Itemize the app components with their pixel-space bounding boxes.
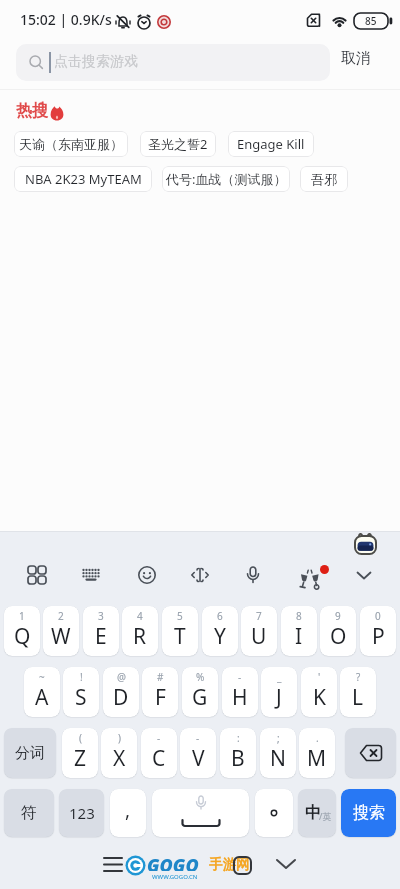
staticText: A bbox=[35, 683, 49, 712]
staticText: ' bbox=[318, 670, 321, 684]
button[interactable]: 1 bbox=[4, 606, 40, 656]
button[interactable]: NBA 2K23 MyTEAM bbox=[14, 166, 152, 192]
staticText: ~ bbox=[39, 670, 45, 684]
button[interactable]: 8 bbox=[281, 606, 317, 656]
staticText: 7 bbox=[256, 609, 262, 623]
button[interactable] bbox=[255, 789, 293, 837]
button[interactable]: ' bbox=[301, 667, 337, 717]
button[interactable]: - bbox=[180, 728, 216, 778]
button[interactable]: 0 bbox=[360, 606, 396, 656]
button[interactable]: 点击搜索游戏 bbox=[16, 44, 330, 81]
button[interactable]: ) bbox=[101, 728, 137, 778]
button[interactable] bbox=[274, 855, 298, 873]
staticText: T bbox=[174, 622, 186, 651]
button[interactable]: 4 bbox=[122, 606, 158, 656]
staticText: - bbox=[157, 731, 161, 745]
staticText: # bbox=[157, 670, 164, 684]
staticText: : bbox=[237, 731, 240, 745]
staticText: L bbox=[352, 683, 364, 712]
button[interactable] bbox=[80, 564, 102, 586]
staticText: ; bbox=[277, 731, 280, 745]
button[interactable]: 6 bbox=[202, 606, 238, 656]
staticText: J bbox=[276, 683, 282, 712]
button[interactable]: 123 bbox=[59, 789, 104, 837]
button[interactable]: 吾邪 bbox=[300, 166, 348, 192]
staticText: ) bbox=[118, 731, 121, 745]
button[interactable]: 中 bbox=[298, 789, 336, 837]
button[interactable]: @ bbox=[103, 667, 139, 717]
staticText: 2 bbox=[58, 609, 64, 623]
staticText: 搜索 bbox=[353, 803, 385, 823]
button[interactable]: 代号:血战（测试服） bbox=[162, 166, 290, 192]
staticText: D bbox=[113, 683, 129, 712]
button[interactable]: 圣光之誓2 bbox=[140, 131, 216, 157]
button[interactable]: 天谕（东南亚服） bbox=[14, 131, 128, 157]
staticText: 8 bbox=[296, 609, 302, 623]
button[interactable]: 9 bbox=[320, 606, 356, 656]
button[interactable]: : bbox=[220, 728, 256, 778]
staticText: 取消 bbox=[341, 49, 371, 68]
staticText: H bbox=[232, 683, 248, 712]
staticText: 手游网 bbox=[209, 856, 250, 872]
button[interactable]: , bbox=[110, 789, 146, 837]
button[interactable]: ; bbox=[260, 728, 296, 778]
staticText: Z bbox=[74, 744, 87, 773]
staticText: 85 bbox=[365, 14, 377, 28]
button[interactable] bbox=[152, 789, 249, 837]
button[interactable]: 3 bbox=[83, 606, 119, 656]
staticText: O bbox=[330, 622, 347, 651]
button[interactable]: # bbox=[142, 667, 178, 717]
staticText: C bbox=[152, 744, 166, 773]
staticText: - bbox=[196, 731, 200, 745]
button[interactable] bbox=[345, 728, 396, 778]
staticText: I bbox=[295, 622, 303, 651]
staticText: WWW.GOGO.CN bbox=[152, 873, 198, 881]
staticText: E bbox=[95, 622, 107, 651]
button[interactable]: ( bbox=[62, 728, 98, 778]
staticText: Y bbox=[214, 622, 226, 651]
button[interactable]: - bbox=[222, 667, 258, 717]
button[interactable] bbox=[136, 564, 158, 586]
button[interactable]: 7 bbox=[241, 606, 277, 656]
staticText: ? bbox=[356, 670, 361, 684]
staticText: S bbox=[75, 683, 87, 712]
button[interactable] bbox=[298, 566, 322, 590]
staticText: , bbox=[125, 797, 131, 823]
button[interactable]: 2 bbox=[43, 606, 79, 656]
staticText: 圣光之誓2 bbox=[148, 135, 208, 153]
staticText: 热搜 bbox=[16, 101, 48, 121]
button[interactable]: ? bbox=[340, 667, 376, 717]
button[interactable] bbox=[353, 564, 375, 586]
button[interactable] bbox=[233, 856, 252, 875]
staticText: 4 bbox=[137, 609, 143, 623]
staticText: NBA 2K23 MyTEAM bbox=[25, 170, 142, 188]
button[interactable]: 分词 bbox=[4, 728, 56, 778]
button[interactable] bbox=[26, 564, 48, 586]
button[interactable]: 搜索 bbox=[341, 789, 396, 837]
staticText: - bbox=[238, 670, 242, 684]
button[interactable] bbox=[242, 564, 264, 586]
button[interactable]: _ bbox=[261, 667, 297, 717]
staticText: 1 bbox=[19, 609, 25, 623]
staticText: 符 bbox=[21, 803, 37, 823]
button[interactable]: 取消 bbox=[341, 49, 385, 75]
button[interactable]: . bbox=[299, 728, 335, 778]
staticText: GOGO bbox=[147, 853, 199, 871]
button[interactable]: ~ bbox=[24, 667, 60, 717]
staticText: R bbox=[133, 622, 147, 651]
button[interactable]: Engage Kill bbox=[228, 131, 314, 157]
button[interactable] bbox=[189, 564, 211, 586]
staticText: ( bbox=[79, 731, 82, 745]
staticText: Engage Kill bbox=[237, 135, 305, 153]
button[interactable]: - bbox=[141, 728, 177, 778]
button[interactable]: 5 bbox=[162, 606, 198, 656]
button[interactable]: 符 bbox=[4, 789, 54, 837]
button[interactable]: ! bbox=[63, 667, 99, 717]
staticText: K bbox=[313, 683, 326, 712]
staticText: % bbox=[196, 670, 205, 684]
staticText: W bbox=[51, 622, 71, 651]
staticText: 15:02 | 0.9K/s bbox=[20, 10, 112, 29]
staticText: 中 bbox=[305, 803, 321, 823]
button[interactable] bbox=[103, 856, 123, 874]
button[interactable]: % bbox=[182, 667, 218, 717]
